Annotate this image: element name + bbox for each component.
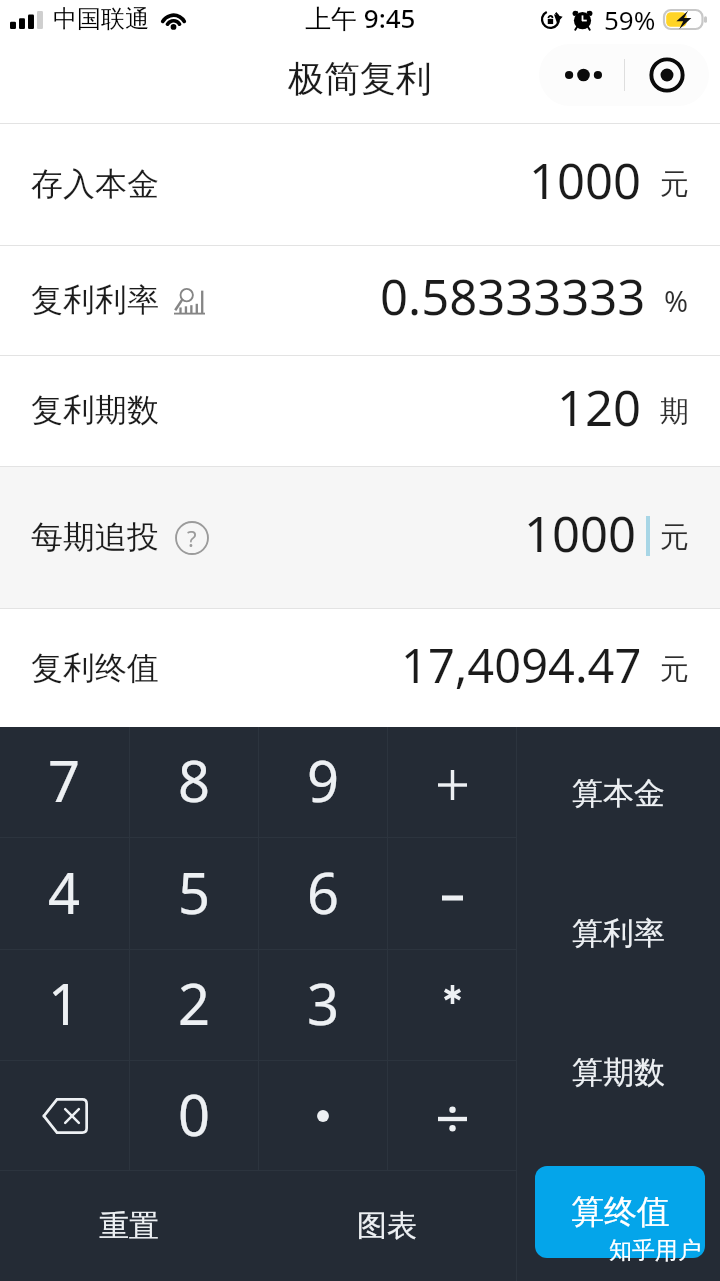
staticText: 复利期数 — [31, 390, 159, 430]
staticText: 1 — [48, 965, 81, 1041]
staticText: 极简复利 — [288, 56, 432, 101]
button[interactable]: 0 — [130, 1061, 258, 1170]
staticText: 每期追投 — [31, 517, 159, 557]
button[interactable]: 存入本金 — [0, 124, 720, 245]
staticText: 算本金 — [572, 774, 665, 813]
button[interactable]: 3 — [259, 950, 387, 1060]
staticText: 知乎用户 — [609, 1236, 701, 1265]
staticText: 中国联通 — [53, 4, 149, 34]
staticText: 期 — [660, 393, 689, 430]
staticText: 4 — [48, 854, 81, 930]
button[interactable]: 6 — [259, 838, 387, 949]
staticText: 2 — [178, 965, 211, 1041]
button[interactable]: 图表 — [258, 1171, 516, 1281]
button[interactable]: 8 — [130, 727, 258, 837]
button[interactable]: 5 — [130, 838, 258, 949]
other: Rotation lock — [541, 9, 562, 30]
button[interactable]: 9 — [259, 727, 387, 837]
button[interactable]: 算期数 — [517, 1006, 720, 1138]
staticText: 复利利率 — [31, 280, 159, 320]
staticText: 59% — [604, 2, 656, 37]
button[interactable] — [259, 1061, 387, 1170]
button[interactable]: 7 — [0, 727, 129, 837]
staticText: 复利终值 — [31, 648, 159, 688]
staticText: 9 — [307, 742, 340, 818]
staticText: 7 — [48, 742, 81, 818]
button[interactable]: 算本金 — [517, 727, 720, 860]
staticText: 8 — [178, 742, 211, 818]
staticText: 元 — [660, 519, 689, 556]
button[interactable]: 复利终值 — [0, 609, 720, 729]
other: Alarm — [572, 9, 593, 30]
staticText: 上午 9:45 — [305, 0, 416, 36]
button[interactable] — [388, 727, 516, 837]
staticText: 算终值 — [571, 1191, 670, 1233]
staticText: 120 — [557, 374, 642, 441]
staticText: 元 — [660, 166, 689, 203]
staticText: 存入本金 — [31, 164, 159, 204]
staticText: 0.58333333 — [380, 263, 646, 330]
button[interactable]: Close — [625, 44, 709, 106]
button[interactable]: More options — [539, 44, 624, 106]
button[interactable]: 算终值 — [535, 1166, 705, 1258]
button[interactable]: 复利利率 — [0, 246, 720, 355]
button[interactable]: 4 — [0, 838, 129, 949]
button[interactable]: 重置 — [0, 1171, 258, 1281]
staticText: 1000 — [529, 147, 642, 214]
button[interactable] — [388, 1061, 516, 1170]
staticText: 6 — [307, 854, 340, 930]
other: Backspace — [41, 1098, 88, 1134]
button[interactable]: 算利率 — [517, 860, 720, 1006]
button[interactable] — [388, 950, 516, 1060]
staticText: ? — [187, 523, 197, 553]
staticText: % — [664, 281, 689, 320]
staticText: 重置 — [99, 1207, 159, 1245]
button[interactable]: Backspace — [0, 1061, 129, 1170]
staticText: 算期数 — [572, 1053, 665, 1092]
staticText: 算利率 — [572, 914, 665, 953]
staticText: 图表 — [357, 1207, 417, 1245]
staticText: 3 — [307, 965, 340, 1041]
button[interactable]: 每期追投 — [0, 467, 720, 608]
staticText: 0 — [178, 1076, 211, 1152]
staticText: 元 — [660, 651, 689, 688]
button[interactable]: 复利期数 — [0, 356, 720, 466]
button[interactable]: 1 — [0, 950, 129, 1060]
staticText: 17,4094.47 — [401, 633, 642, 697]
button[interactable]: 2 — [130, 950, 258, 1060]
button[interactable] — [388, 838, 516, 949]
staticText: 1000 — [524, 500, 637, 567]
staticText: 5 — [178, 854, 211, 930]
